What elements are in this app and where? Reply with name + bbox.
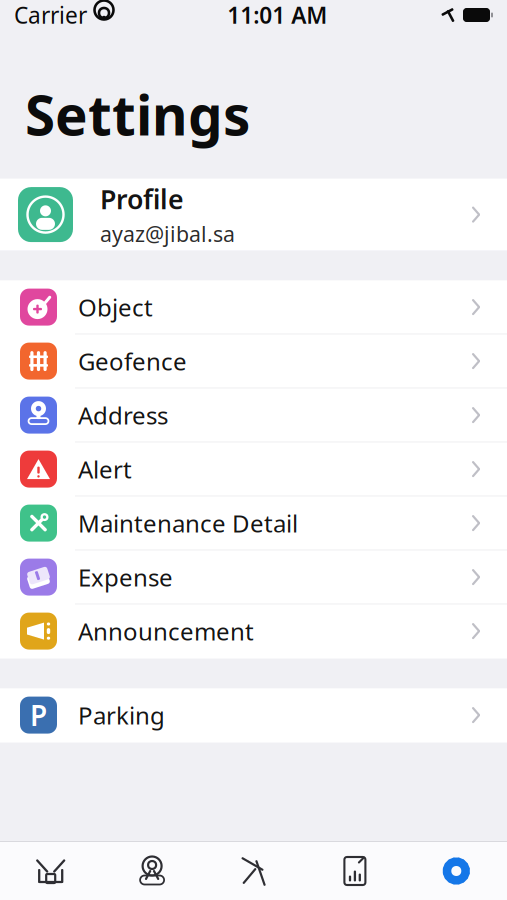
staticText: Announcement — [78, 615, 254, 647]
button[interactable]: P — [0, 689, 507, 743]
button[interactable]: Expense — [0, 551, 507, 605]
button[interactable]: Home — [0, 842, 101, 900]
button[interactable]: Maintenance Detail — [0, 497, 507, 551]
staticText: P — [30, 696, 47, 734]
button[interactable]: Geofence — [0, 335, 507, 389]
staticText: Alert — [78, 453, 132, 485]
button[interactable]: Announcement — [0, 605, 507, 659]
staticText: ayaz@jibal.sa — [100, 220, 235, 248]
button[interactable]: Address — [0, 389, 507, 443]
staticText: Parking — [78, 699, 165, 731]
button[interactable]: Alert — [0, 443, 507, 497]
staticText: Expense — [78, 561, 173, 593]
button[interactable]: Reports — [304, 842, 406, 900]
button[interactable]: Profile — [0, 179, 507, 251]
button[interactable]: Settings — [406, 842, 507, 900]
button[interactable]: Places — [101, 842, 203, 900]
staticText: Maintenance Detail — [78, 507, 298, 539]
button[interactable]: Navigate — [203, 842, 304, 900]
staticText: Settings — [25, 78, 250, 151]
staticText: Address — [78, 399, 168, 431]
staticText: Geofence — [78, 345, 187, 377]
staticText: Carrier — [14, 0, 87, 30]
button[interactable]: Object — [0, 281, 507, 335]
staticText: 11:01 AM — [227, 0, 327, 30]
staticText: Profile — [100, 181, 184, 217]
staticText: Object — [78, 291, 153, 323]
